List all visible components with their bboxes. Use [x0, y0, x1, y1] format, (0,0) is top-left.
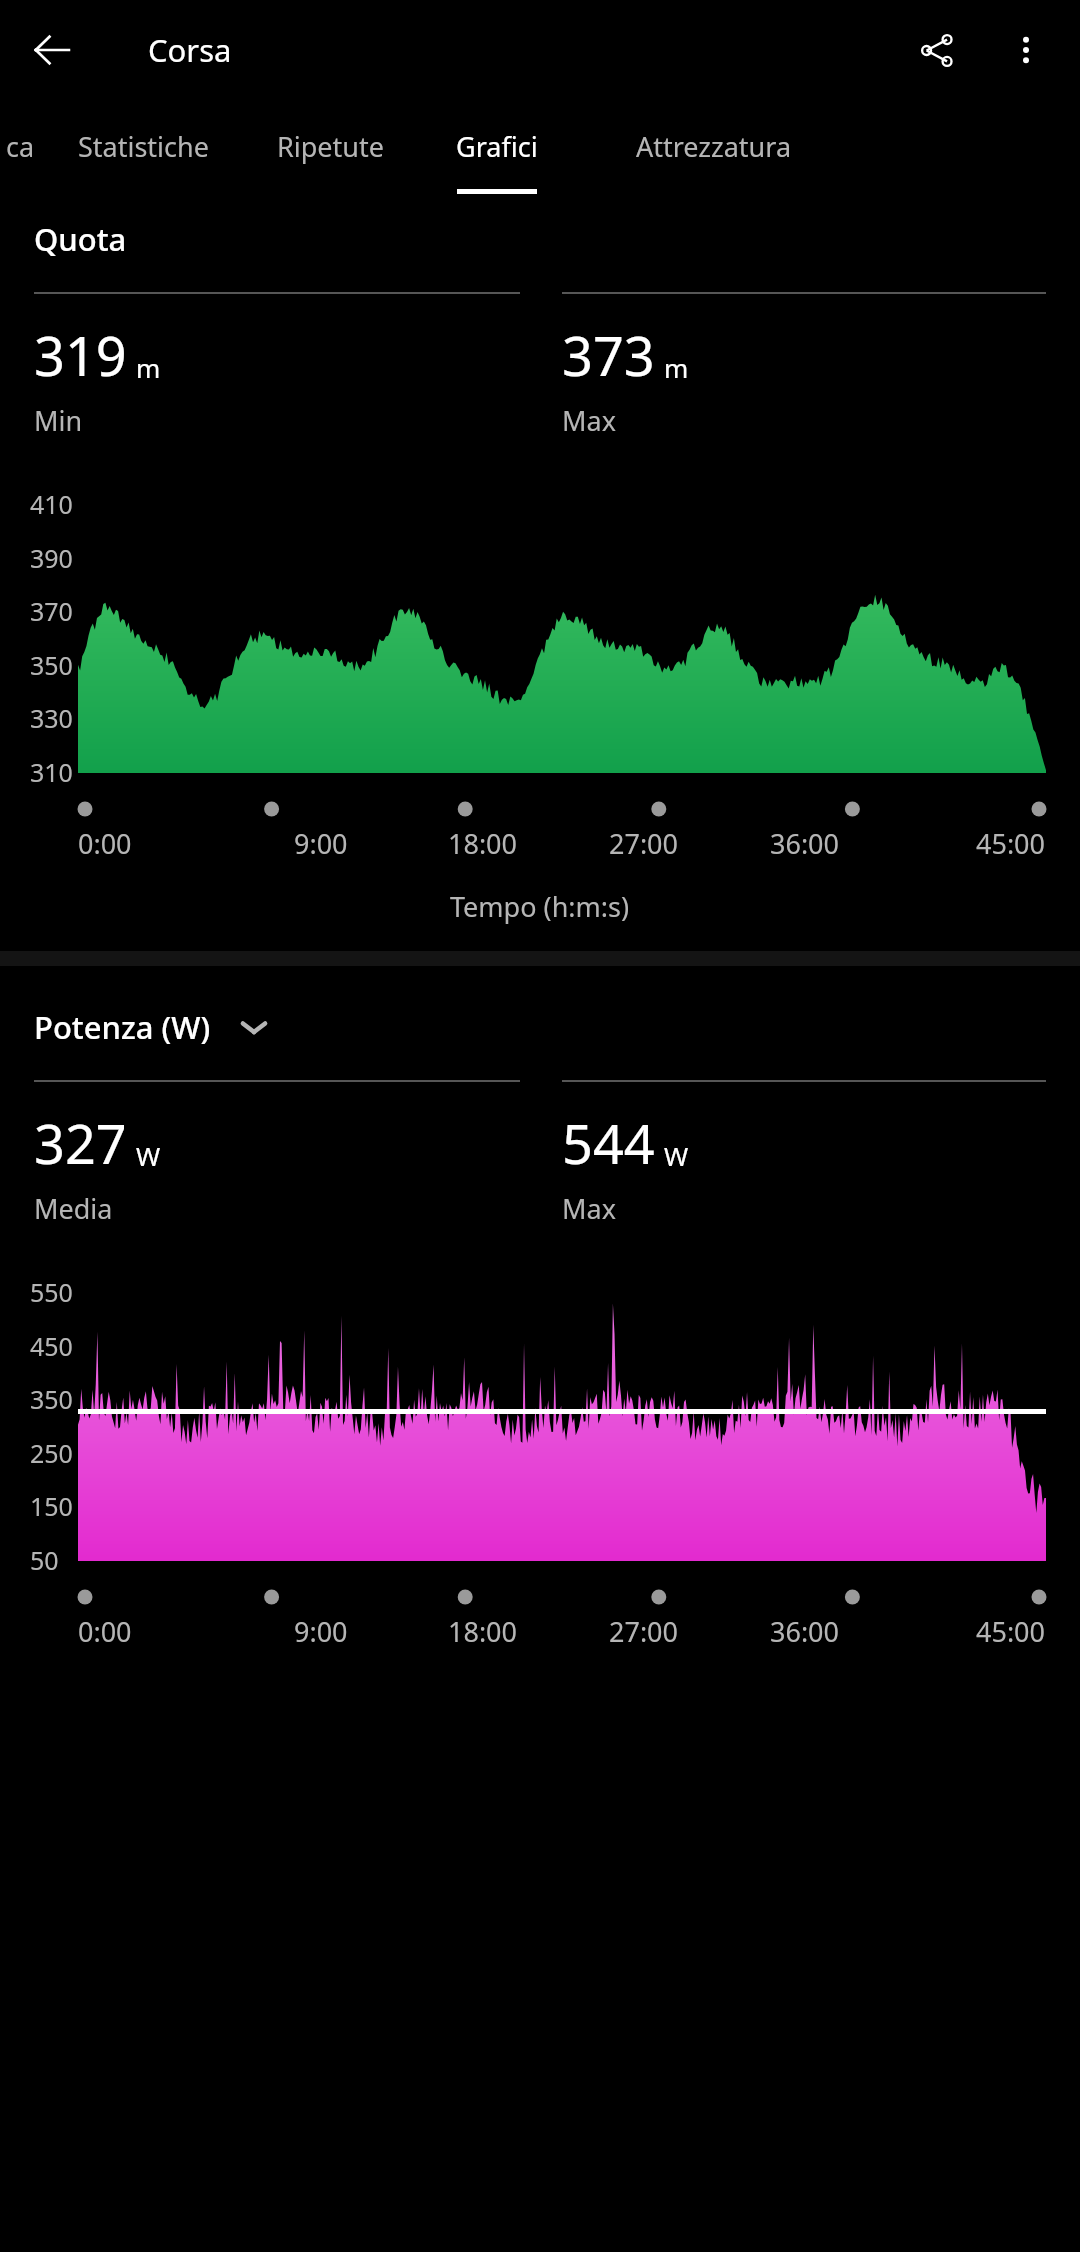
button[interactable]: Grafici — [416, 100, 578, 202]
staticText: 370 — [30, 594, 73, 628]
button[interactable]: Statistiche — [40, 100, 246, 202]
staticText: 327 — [34, 1106, 127, 1180]
staticText: 544 — [562, 1106, 655, 1180]
staticText: Max — [562, 1190, 616, 1227]
staticText: 36:00 — [770, 825, 840, 862]
staticText: 0:00 — [78, 825, 132, 862]
staticText: 45:00 — [976, 1613, 1046, 1650]
button[interactable]: Share — [904, 18, 968, 82]
staticText: Statistiche — [78, 128, 209, 165]
staticText: Min — [34, 402, 83, 439]
staticText: ca — [6, 128, 35, 165]
staticText: 350 — [30, 648, 73, 682]
staticText: Tempo (h:m:s) — [450, 888, 630, 925]
staticText: W — [664, 1138, 689, 1173]
staticText: m — [664, 350, 689, 385]
staticText: Attrezzatura — [636, 128, 792, 165]
staticText: 250 — [30, 1436, 73, 1470]
staticText: 550 — [30, 1275, 73, 1309]
staticText: 18:00 — [448, 1613, 518, 1650]
staticText: m — [136, 350, 161, 385]
button[interactable]: Back — [20, 18, 84, 82]
staticText: 50 — [30, 1543, 59, 1577]
staticText: Media — [34, 1190, 113, 1227]
staticText: 27:00 — [609, 825, 679, 862]
staticText: 27:00 — [609, 1613, 679, 1650]
staticText: 390 — [30, 541, 73, 575]
staticText: 0:00 — [78, 1613, 132, 1650]
staticText: 9:00 — [294, 825, 348, 862]
staticText: W — [136, 1138, 161, 1173]
staticText: 9:00 — [294, 1613, 348, 1650]
button[interactable]: ca — [0, 100, 40, 202]
staticText: 45:00 — [976, 825, 1046, 862]
staticText: 373 — [562, 318, 655, 392]
staticText: 319 — [34, 318, 127, 392]
staticText: 310 — [30, 755, 73, 789]
staticText: 350 — [30, 1382, 73, 1416]
staticText: Corsa — [148, 29, 232, 71]
staticText: Grafici — [456, 128, 538, 165]
staticText: 330 — [30, 701, 73, 735]
staticText: Potenza (W) — [34, 1006, 211, 1048]
button[interactable]: More options — [994, 18, 1058, 82]
staticText: 150 — [30, 1489, 73, 1523]
staticText: 36:00 — [770, 1613, 840, 1650]
staticText: 410 — [30, 487, 73, 521]
staticText: 18:00 — [448, 825, 518, 862]
staticText: 450 — [30, 1329, 73, 1363]
staticText: Quota — [34, 218, 127, 260]
staticText: Ripetute — [277, 128, 385, 165]
button[interactable]: Potenza (W) — [34, 1006, 269, 1048]
button[interactable]: Ripetute — [246, 100, 416, 202]
button[interactable]: Attrezzatura — [578, 100, 850, 202]
staticText: Max — [562, 402, 616, 439]
